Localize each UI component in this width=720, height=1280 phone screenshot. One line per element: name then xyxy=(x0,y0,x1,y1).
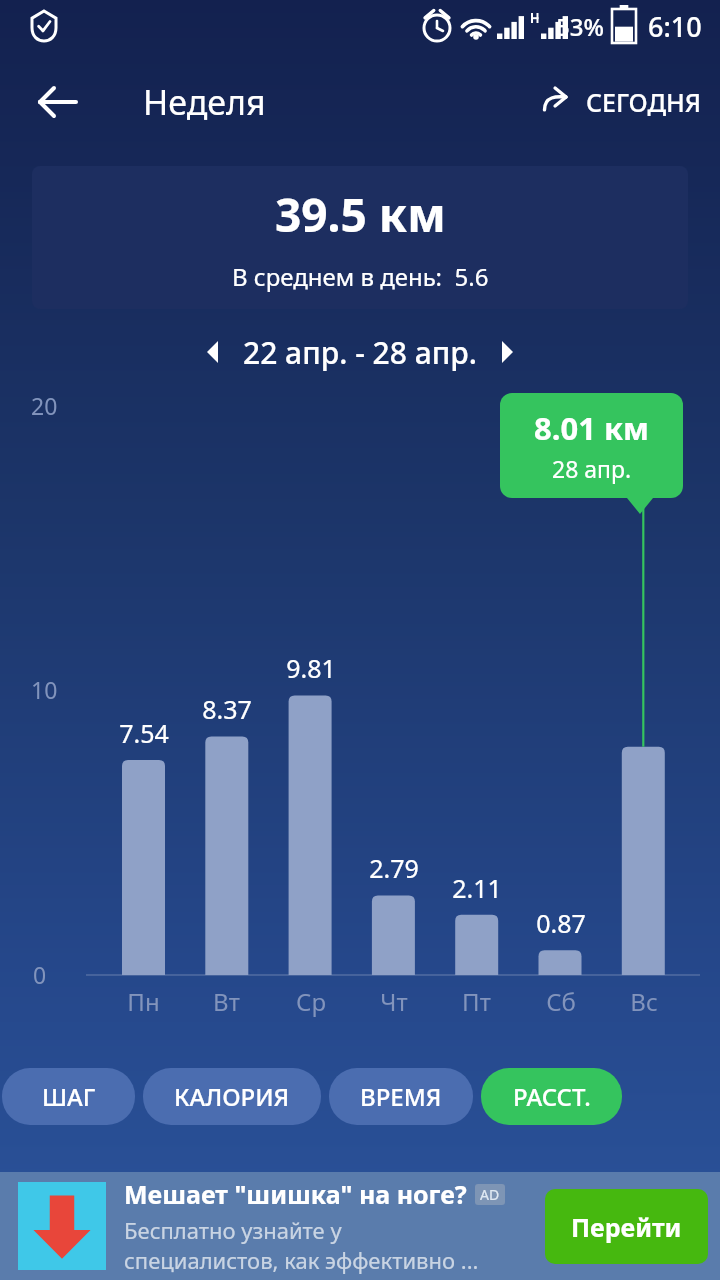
staticText: В среднем в день: 5.6 xyxy=(232,260,489,293)
button[interactable]: Перейти xyxy=(545,1189,708,1264)
staticText: 39.5 км xyxy=(275,183,446,246)
button[interactable]: ШАГ xyxy=(2,1068,135,1125)
staticText: 0 xyxy=(33,959,47,990)
staticText: 2.11 xyxy=(452,871,502,905)
staticText: Вс xyxy=(630,985,658,1018)
staticText: КАЛОРИЯ xyxy=(174,1080,290,1113)
button[interactable]: 39.5 км xyxy=(32,166,688,309)
button[interactable]: Мешает "шишка" на ноге? xyxy=(0,1172,720,1280)
button[interactable]: Previous week xyxy=(191,330,235,374)
staticText: Мешает "шишка" на ноге? xyxy=(124,1177,467,1211)
button[interactable]: РАССТ. xyxy=(481,1068,622,1125)
staticText: AD xyxy=(480,1185,500,1204)
staticText: ШАГ xyxy=(42,1080,96,1113)
staticText: Сб xyxy=(546,985,576,1018)
staticText: 28 апр. xyxy=(552,453,632,484)
button[interactable]: 8.01 км xyxy=(500,393,683,498)
staticText: 8.01 км xyxy=(534,407,650,449)
staticText: Бесплатно узнайте у специалистов, как эф… xyxy=(124,1215,479,1275)
staticText: Пт xyxy=(462,985,491,1018)
button[interactable]: Next week xyxy=(485,330,529,374)
staticText: 20 xyxy=(31,390,58,421)
staticText: 10 xyxy=(31,674,58,705)
staticText: 53% xyxy=(556,10,604,43)
staticText: Перейти xyxy=(571,1210,682,1244)
button[interactable]: Back xyxy=(26,70,90,134)
staticText: Неделя xyxy=(143,79,266,125)
button[interactable]: 22 апр. - 28 апр. xyxy=(243,332,477,373)
button[interactable]: СЕГОДНЯ xyxy=(532,76,708,128)
staticText: 8.37 xyxy=(202,692,252,726)
staticText: ВРЕМЯ xyxy=(360,1080,442,1113)
staticText: СЕГОДНЯ xyxy=(586,85,702,119)
button[interactable]: КАЛОРИЯ xyxy=(143,1068,321,1125)
staticText: Ср xyxy=(296,985,326,1018)
staticText: Вт xyxy=(213,985,240,1018)
staticText: 7.54 xyxy=(119,716,169,750)
staticText: 0.87 xyxy=(536,906,586,940)
staticText: 2.79 xyxy=(369,851,419,885)
button[interactable]: ВРЕМЯ xyxy=(329,1068,473,1125)
staticText: 9.81 xyxy=(286,651,336,685)
staticText: Чт xyxy=(380,985,408,1018)
staticText: Пн xyxy=(127,985,160,1018)
staticText: РАССТ. xyxy=(513,1080,591,1113)
staticText: 6:10 xyxy=(648,8,702,45)
